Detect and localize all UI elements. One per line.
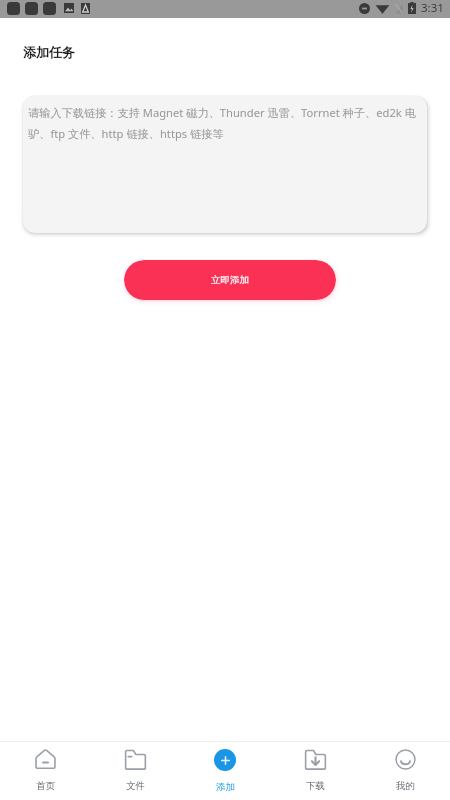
staticText: 请输入下载链接：支持 Magnet 磁力、Thunder 迅雷、Torrnet … (28, 105, 416, 141)
button[interactable]: 文件 (90, 742, 180, 800)
staticText: 添加 (216, 781, 235, 793)
staticText: 首页 (36, 780, 55, 792)
staticText: 下载 (306, 780, 325, 792)
staticText: 添加任务 (23, 44, 75, 60)
staticText: 文件 (126, 780, 145, 792)
button[interactable]: 下载 (270, 742, 360, 800)
button[interactable]: 请输入下载链接：支持 Magnet 磁力、Thunder 迅雷、Torrnet … (23, 96, 427, 233)
other: 添加 (214, 749, 236, 771)
button[interactable]: 首页 (0, 742, 90, 800)
button[interactable]: 添加 (180, 742, 270, 800)
staticText: 立即添加 (211, 274, 249, 286)
staticText: 我的 (396, 780, 415, 792)
button[interactable]: 立即添加 (124, 260, 336, 300)
button[interactable]: 我的 (360, 742, 450, 800)
staticText: 3:31 (421, 0, 444, 16)
